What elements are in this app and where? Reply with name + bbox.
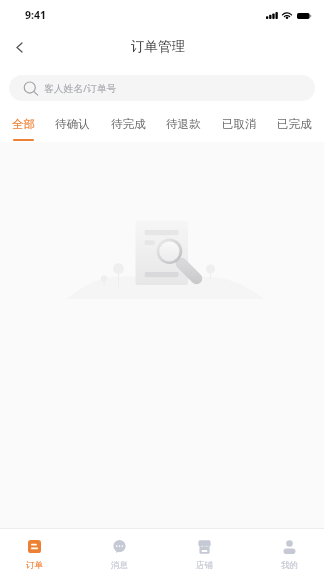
button[interactable]: 消息 [97,529,142,576]
button[interactable]: 订单 [12,529,57,576]
button[interactable]: 我的 [267,529,312,576]
staticText: 订单管理 [131,38,185,55]
button[interactable]: 已取消 [222,102,257,141]
staticText: 客人姓名/订单号 [44,82,117,95]
staticText: 待退款 [166,117,201,131]
button[interactable]: 客人姓名/订单号 [9,75,315,101]
button[interactable]: 已完成 [277,102,312,141]
staticText: 待完成 [111,117,146,131]
staticText: 消息 [111,560,128,571]
button[interactable]: 待完成 [111,102,146,141]
staticText: 待确认 [55,117,90,131]
button[interactable]: 店铺 [182,529,227,576]
staticText: 已完成 [277,117,312,131]
button[interactable]: 待退款 [166,102,201,141]
staticText: 已取消 [222,117,257,131]
staticText: 订单 [26,560,43,571]
staticText: 店铺 [196,560,213,571]
staticText: 9:41 [25,8,46,22]
button[interactable]: 全部 [12,102,35,141]
staticText: 我的 [281,560,298,571]
button[interactable]: Back [1,30,37,65]
button[interactable]: 待确认 [55,102,90,141]
staticText: 全部 [12,117,35,131]
